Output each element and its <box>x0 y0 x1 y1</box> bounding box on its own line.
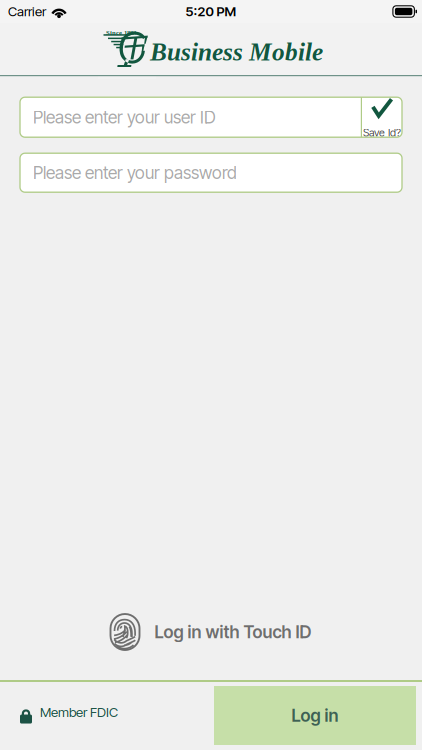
button[interactable]: Log in with Touch ID <box>102 610 319 654</box>
staticText: 5:20 PM <box>185 3 236 19</box>
staticText: Since 1883 <box>106 29 136 36</box>
button[interactable]: Save Id? <box>362 97 402 137</box>
staticText: Member FDIC <box>40 704 118 720</box>
button[interactable]: Log in <box>214 686 416 745</box>
staticText: Business Mobile <box>150 38 323 66</box>
staticText: Log in <box>291 705 338 726</box>
staticText: Log in with Touch ID <box>154 621 311 642</box>
staticText: Please enter your password <box>33 162 237 183</box>
button[interactable]: Please enter your user ID <box>20 97 361 137</box>
staticText: Save Id? <box>363 126 401 139</box>
button[interactable]: Please enter your password <box>20 153 402 192</box>
staticText: Please enter your user ID <box>33 107 216 128</box>
staticText: Carrier <box>8 3 46 19</box>
